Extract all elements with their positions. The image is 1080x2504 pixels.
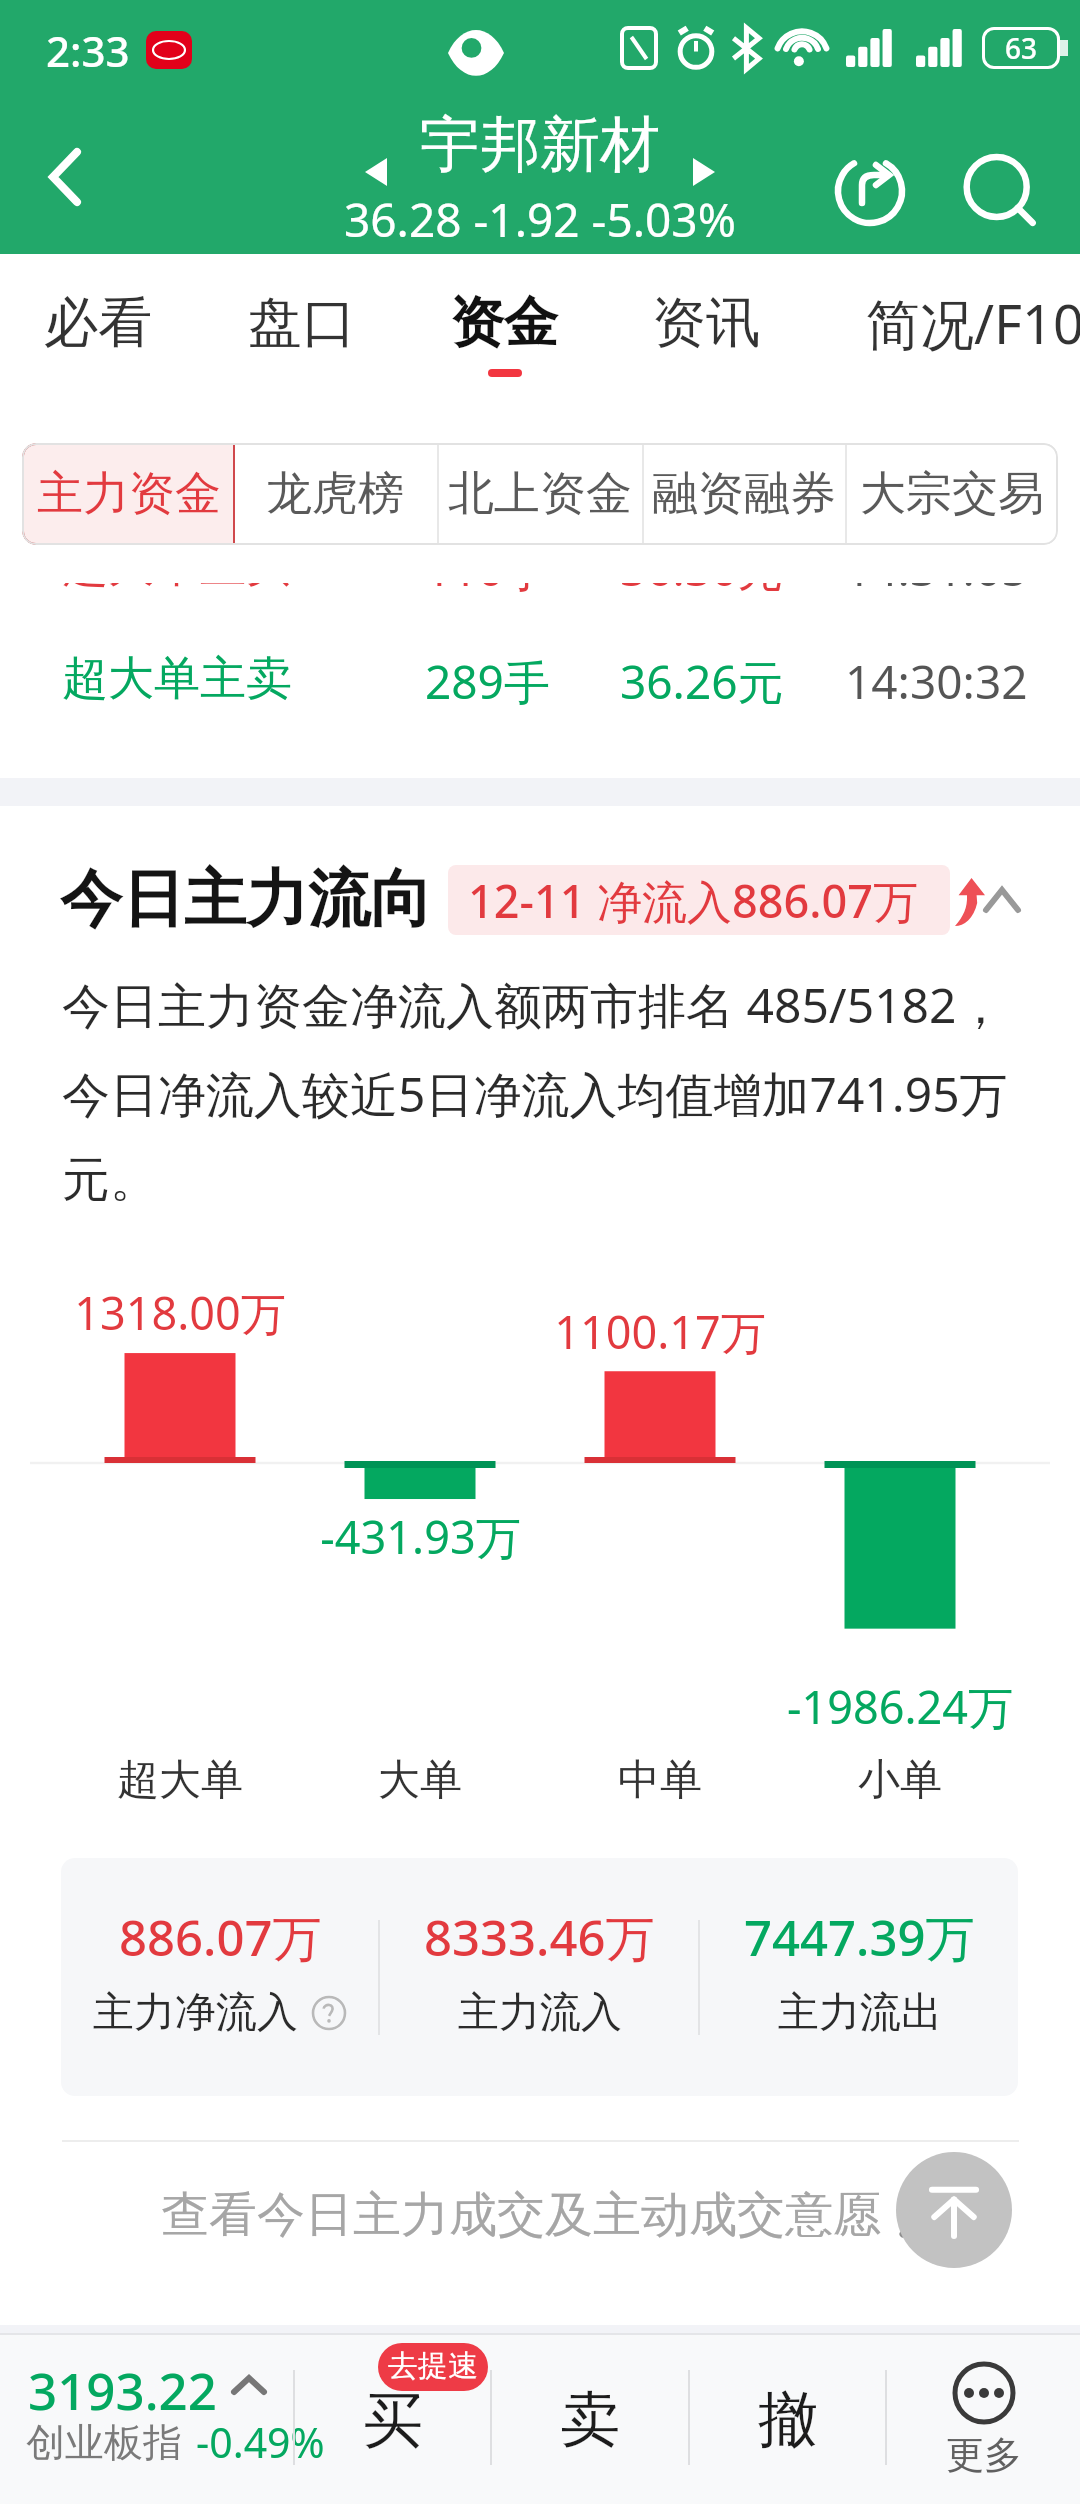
staticText: 主力流入: [458, 1987, 622, 2039]
staticText: 卖: [560, 2382, 620, 2458]
staticText: 盘口: [248, 289, 356, 357]
staticText: 更多: [946, 2431, 1022, 2479]
staticText: 7447.39万: [744, 1904, 975, 1971]
staticText: 中单: [618, 1754, 702, 1807]
staticText: 2:33: [46, 22, 130, 79]
button[interactable]: 资讯: [606, 254, 806, 400]
button[interactable]: 主力资金: [22, 443, 233, 545]
staticText: 886.07万: [119, 1904, 322, 1971]
staticText: 8333.46万: [424, 1904, 655, 1971]
staticText: 简况/F10: [866, 286, 1080, 360]
staticText: 今日主力流向: [60, 860, 432, 938]
staticText: 14:31:05: [845, 537, 1028, 599]
button[interactable]: [0, 2335, 293, 2504]
staticText: 北上资金: [448, 465, 632, 523]
staticText: 去提速: [388, 2347, 478, 2385]
button[interactable]: Share: [810, 136, 930, 246]
button[interactable]: 北上资金: [437, 443, 642, 545]
staticText: 创业板指: [26, 2418, 182, 2467]
staticText: 超大单: [117, 1754, 243, 1807]
button[interactable]: Scroll to top: [896, 2152, 1012, 2268]
button[interactable]: 查看今日主力成交及主动成交意愿: [0, 2150, 1080, 2280]
staticText: 宇邦新材: [420, 107, 660, 183]
button[interactable]: 必看: [0, 254, 198, 400]
staticText: 110手: [425, 537, 550, 599]
staticText: 小单: [858, 1754, 942, 1807]
button[interactable]: Search: [942, 138, 1062, 248]
button[interactable]: 卖: [492, 2335, 688, 2504]
button[interactable]: 撤: [690, 2335, 885, 2504]
staticText: -1986.24万: [787, 1676, 1013, 1737]
staticText: 主力流出: [778, 1987, 942, 2039]
staticText: 必看: [44, 289, 152, 357]
staticText: 资金: [450, 289, 558, 357]
staticText: 3193.22: [28, 2355, 217, 2424]
staticText: 1100.17万: [554, 1301, 766, 1362]
staticText: 资讯: [652, 289, 760, 357]
staticText: 14:30:32: [845, 650, 1028, 712]
button[interactable]: 大宗交易: [845, 443, 1058, 545]
staticText: 买: [363, 2383, 423, 2459]
staticText: 大宗交易: [860, 465, 1044, 523]
staticText: 36.26元: [620, 650, 784, 712]
button[interactable]: 资金: [404, 254, 604, 400]
button[interactable]: 买: [295, 2335, 490, 2504]
staticText: 今日主力资金净流入额两市排名 485/5182，今日净流入较近5日净流入均值增加…: [62, 972, 1024, 1211]
staticText: 融资融券: [652, 465, 836, 523]
staticText: 主力净流入: [93, 1987, 298, 2039]
staticText: 大单: [378, 1754, 462, 1807]
button[interactable]: 主力资金: [22, 443, 235, 545]
button[interactable]: 龙虎榜: [233, 443, 437, 545]
staticText: 1318.00万: [74, 1282, 286, 1343]
button[interactable]: 更多: [887, 2335, 1080, 2504]
staticText: 12-11 净流入886.07万: [468, 870, 919, 931]
staticText: 36.30元: [620, 537, 784, 599]
button[interactable]: Back: [10, 100, 150, 254]
staticText: 36.28 -1.92 -5.03%: [344, 188, 736, 251]
staticText: 主力资金: [36, 465, 220, 523]
staticText: -431.93万: [320, 1506, 521, 1567]
button[interactable]: 融资融券: [642, 443, 845, 545]
staticText: 超大单主买: [62, 537, 292, 595]
staticText: 龙虎榜: [266, 465, 404, 523]
staticText: 289手: [425, 650, 550, 712]
staticText: 超大单主卖: [62, 650, 292, 708]
staticText: 63: [1005, 29, 1038, 67]
button[interactable]: 盘口: [202, 254, 402, 400]
staticText: 查看今日主力成交及主动成交意愿: [161, 2185, 881, 2245]
staticText: -0.49%: [196, 2414, 325, 2470]
staticText: 撤: [758, 2382, 818, 2458]
staticText: 主力资金: [37, 465, 221, 523]
button[interactable]: 简况/F10: [855, 254, 1080, 400]
